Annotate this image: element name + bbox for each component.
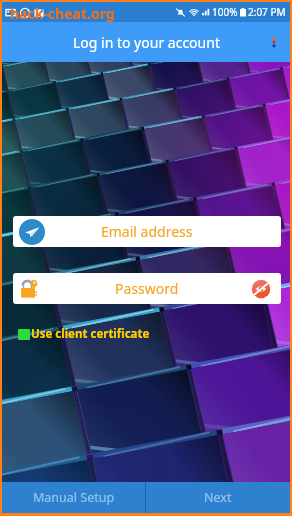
staticText: 2:07 PM [248, 5, 286, 19]
button[interactable]: Hide password [250, 278, 272, 300]
button[interactable]: Next [146, 482, 290, 513]
staticText: Manual Setup [33, 489, 115, 506]
staticText: Log in to your account [73, 33, 220, 52]
button[interactable]: Password [13, 273, 281, 304]
staticText: Email address [101, 222, 193, 241]
staticText: Next [204, 489, 232, 506]
staticText: hack-cheat.org [10, 4, 115, 22]
button[interactable]: More options [258, 22, 290, 62]
button[interactable]: Email address [13, 216, 281, 247]
staticText: 100% [212, 5, 238, 19]
button[interactable]: Manual Setup [2, 482, 145, 513]
staticText: Use client certificate [31, 326, 150, 342]
button[interactable]: Use client certificate [18, 326, 150, 342]
staticText: Password [115, 279, 179, 298]
